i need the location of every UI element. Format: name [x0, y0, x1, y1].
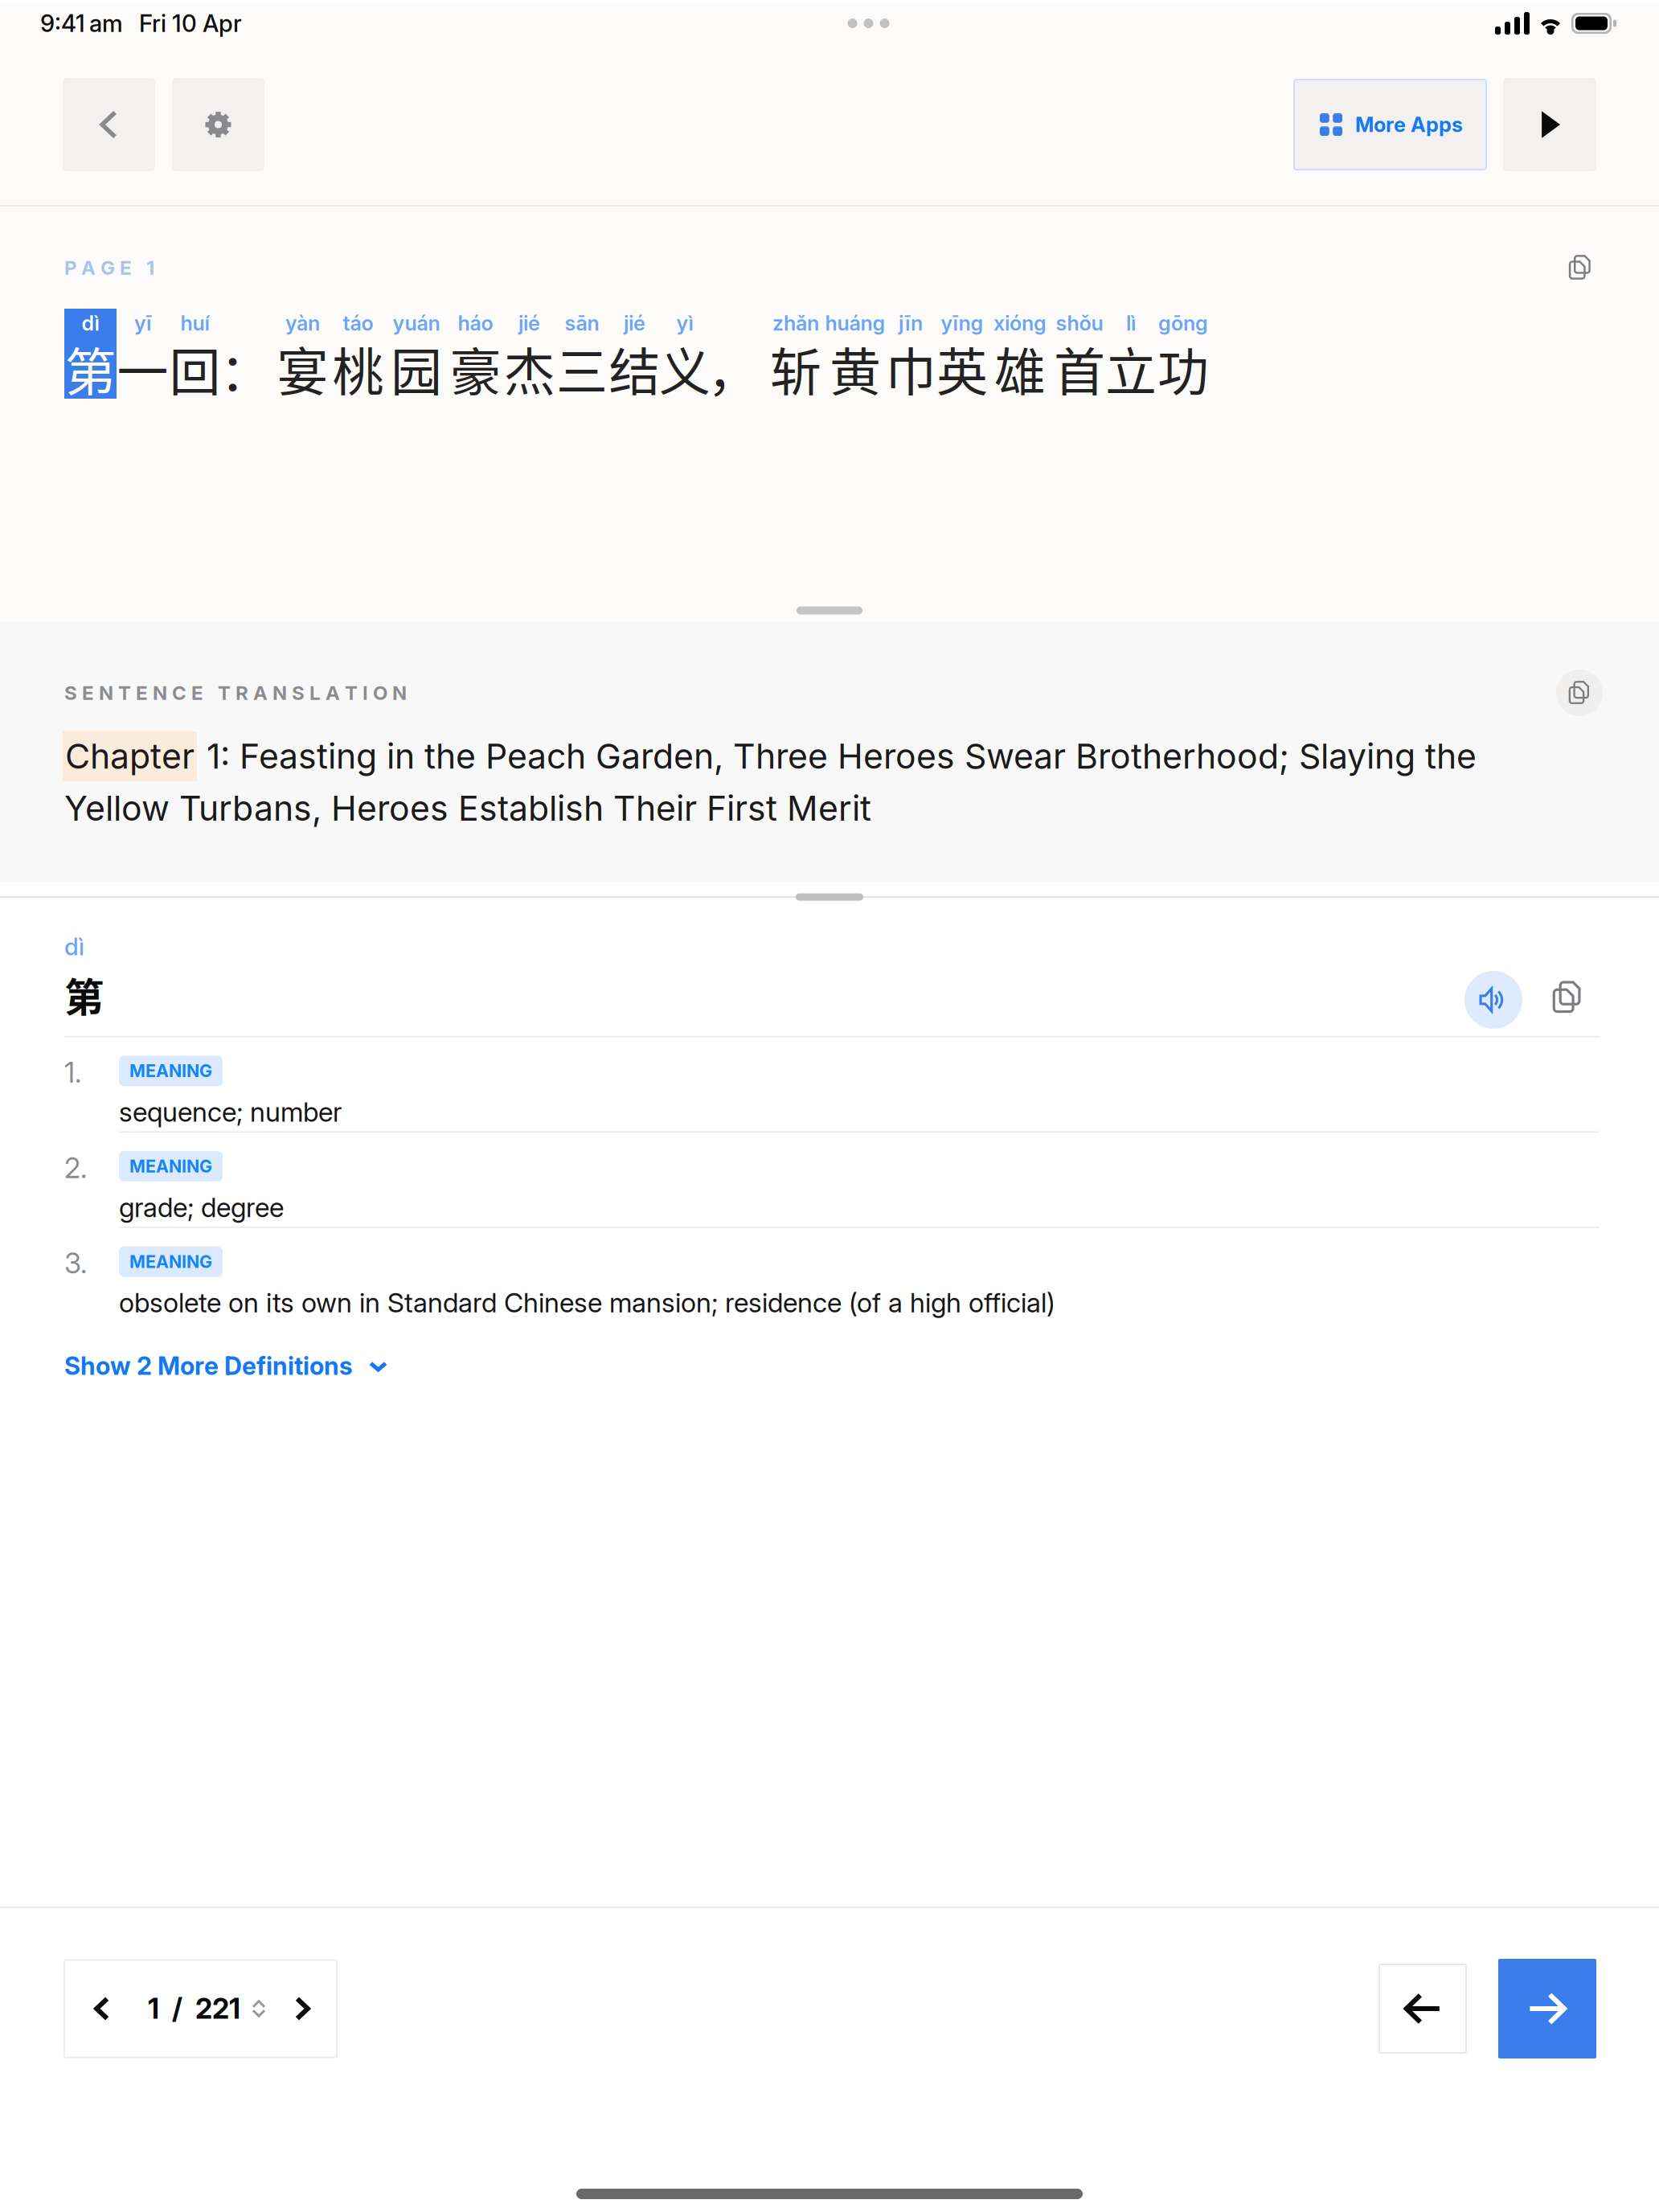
staticText: huí	[180, 311, 209, 335]
staticText: 杰	[504, 331, 555, 405]
staticText: grade; degree	[119, 1191, 284, 1224]
staticText: 第	[65, 331, 116, 405]
staticText: 雄	[994, 331, 1046, 405]
staticText: zhǎn	[772, 311, 819, 335]
staticText: 1: Feasting in the Peach Garden, Three H…	[197, 735, 1477, 777]
staticText: /	[172, 1992, 182, 2025]
staticText: 回	[169, 331, 221, 405]
button[interactable]: More Apps	[1294, 80, 1486, 170]
button[interactable]: Show 2 More Definitions	[64, 1351, 387, 1381]
staticText: 结	[609, 331, 660, 405]
staticText: Chapter	[65, 735, 195, 777]
staticText: 斩	[770, 331, 821, 405]
staticText: yàn	[285, 311, 320, 335]
staticText: 义	[659, 331, 711, 405]
staticText: ，	[707, 331, 759, 405]
button[interactable]: Copy word	[1542, 972, 1593, 1023]
staticText: 首	[1054, 331, 1105, 405]
staticText: 第	[64, 966, 104, 1023]
staticText: sān	[565, 311, 599, 335]
staticText: 2.	[64, 1151, 87, 1185]
staticText: ：	[220, 331, 271, 405]
staticText: yì	[676, 311, 693, 335]
staticText: 3.	[64, 1246, 87, 1280]
staticText: 9:41	[40, 9, 85, 38]
staticText: MEANING	[129, 1061, 212, 1081]
staticText: sequence; number	[119, 1096, 342, 1128]
staticText: 英	[936, 331, 988, 405]
staticText: jīn	[899, 311, 923, 335]
staticText: MEANING	[129, 1156, 212, 1177]
staticText: dì	[82, 311, 99, 335]
staticText: 桃	[332, 331, 384, 405]
staticText: Fri 10 Apr	[139, 9, 242, 38]
staticText: gōng	[1158, 311, 1208, 335]
staticText: yīng	[941, 311, 983, 335]
staticText: Show 2 More Definitions	[64, 1351, 353, 1381]
staticText: P A G E 1	[64, 256, 154, 279]
staticText: 功	[1157, 331, 1209, 405]
staticText: 豪	[450, 331, 501, 405]
staticText: táo	[343, 311, 373, 335]
button[interactable]: Copy translation	[1556, 670, 1603, 716]
staticText: Yellow Turbans, Heroes Establish Their F…	[64, 787, 871, 829]
staticText: háo	[458, 311, 493, 335]
staticText: 一	[117, 331, 168, 405]
staticText: 1.	[64, 1056, 81, 1089]
button[interactable]: Play	[1503, 78, 1596, 171]
button[interactable]: Back	[63, 78, 155, 171]
staticText: jié	[518, 311, 540, 335]
button[interactable]: Play pronunciation	[1464, 971, 1522, 1029]
button[interactable]: Previous	[1379, 1964, 1466, 2053]
staticText: 立	[1105, 331, 1157, 405]
staticText: yī	[134, 311, 151, 335]
staticText: 221	[195, 1992, 240, 2025]
staticText: lì	[1126, 311, 1136, 335]
staticText: dì	[64, 932, 84, 961]
staticText: 园	[391, 331, 442, 405]
staticText: am	[89, 9, 123, 38]
button[interactable]: Copy sentence	[1561, 248, 1600, 287]
staticText: MEANING	[129, 1251, 212, 1272]
staticText: More Apps	[1355, 112, 1463, 137]
staticText: 1	[148, 1992, 159, 2025]
button[interactable]: Next	[1498, 1959, 1596, 2058]
staticText: 巾	[885, 331, 936, 405]
staticText: huáng	[825, 311, 885, 335]
staticText: 黄	[829, 331, 881, 405]
staticText: obsolete on its own in Standard Chinese …	[119, 1286, 1055, 1319]
button[interactable]: Settings	[172, 78, 264, 171]
staticText: xióng	[993, 311, 1047, 335]
staticText: 宴	[277, 331, 328, 405]
staticText: S E N T E N C E T R A N S L A T I O N	[64, 681, 407, 705]
staticText: yuán	[393, 311, 440, 335]
button[interactable]: 1	[64, 1960, 337, 2057]
staticText: jié	[624, 311, 645, 335]
staticText: 三	[556, 331, 608, 405]
staticText: shǒu	[1056, 311, 1103, 335]
